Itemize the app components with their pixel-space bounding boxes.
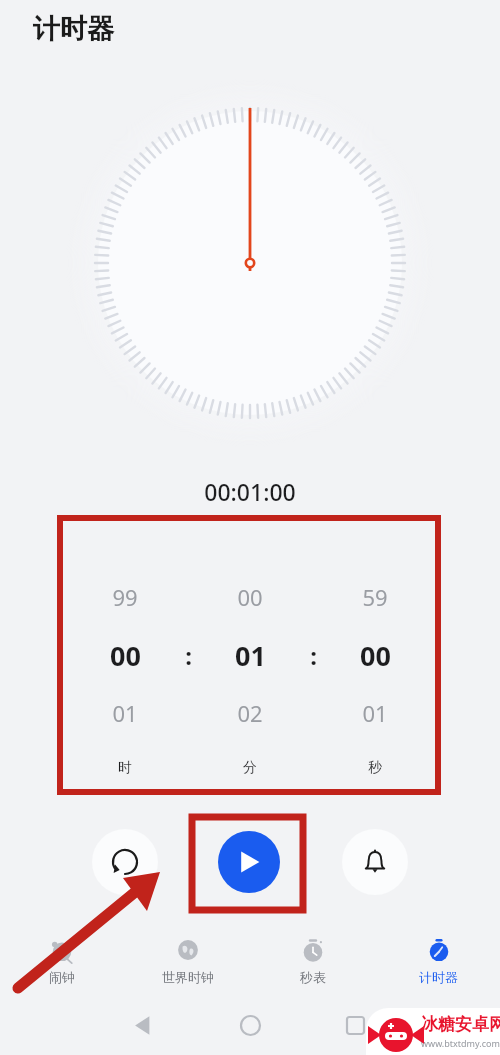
button[interactable]: Home (220, 996, 280, 1055)
button[interactable]: : (148, 637, 228, 673)
staticText: 00 (360, 637, 391, 673)
button[interactable]: 00 (210, 579, 290, 615)
staticText: 01 (235, 637, 266, 673)
staticText: 99 (112, 582, 138, 612)
staticText: 分 (243, 759, 257, 777)
staticText: 计时器 (33, 12, 114, 46)
staticText: 00:01:00 (204, 476, 296, 507)
staticText: 秒 (368, 759, 382, 777)
button[interactable]: 99 (85, 579, 165, 615)
button[interactable]: 计时器 (382, 925, 494, 995)
staticText: 01 (362, 698, 388, 728)
button[interactable]: Back (113, 996, 173, 1055)
staticText: 时 (118, 759, 132, 777)
button[interactable]: 01 (210, 637, 290, 673)
button[interactable]: Start (218, 831, 280, 893)
button[interactable]: 01 (85, 695, 165, 731)
staticText: 01 (112, 698, 138, 728)
staticText: 59 (362, 582, 388, 612)
button[interactable]: 秒 (335, 750, 415, 786)
button[interactable]: 闹钟 (6, 925, 118, 995)
button[interactable]: Recents (325, 996, 385, 1055)
staticText: : (310, 639, 317, 672)
button[interactable]: : (273, 637, 353, 673)
staticText: : (185, 639, 192, 672)
button[interactable]: 00 (85, 637, 165, 673)
staticText: 计时器 (419, 969, 458, 985)
button[interactable]: 秒表 (257, 925, 369, 995)
button[interactable]: 59 (335, 579, 415, 615)
button[interactable]: 分 (210, 750, 290, 786)
button[interactable]: 时 (85, 750, 165, 786)
staticText: www.btxtdmy.com (421, 1037, 500, 1049)
staticText: 00 (237, 582, 263, 612)
staticText: 冰糖安卓网 (421, 1014, 500, 1035)
button[interactable]: Reset (92, 829, 158, 895)
staticText: 世界时钟 (162, 969, 214, 985)
button[interactable]: 02 (210, 695, 290, 731)
staticText: 00 (110, 637, 141, 673)
staticText: 秒表 (300, 969, 326, 985)
staticText: 02 (237, 698, 263, 728)
button[interactable]: 01 (335, 695, 415, 731)
button[interactable]: 世界时钟 (132, 925, 244, 995)
button[interactable]: Ringtone (342, 829, 408, 895)
staticText: 闹钟 (49, 969, 75, 985)
button[interactable]: 00 (335, 637, 415, 673)
